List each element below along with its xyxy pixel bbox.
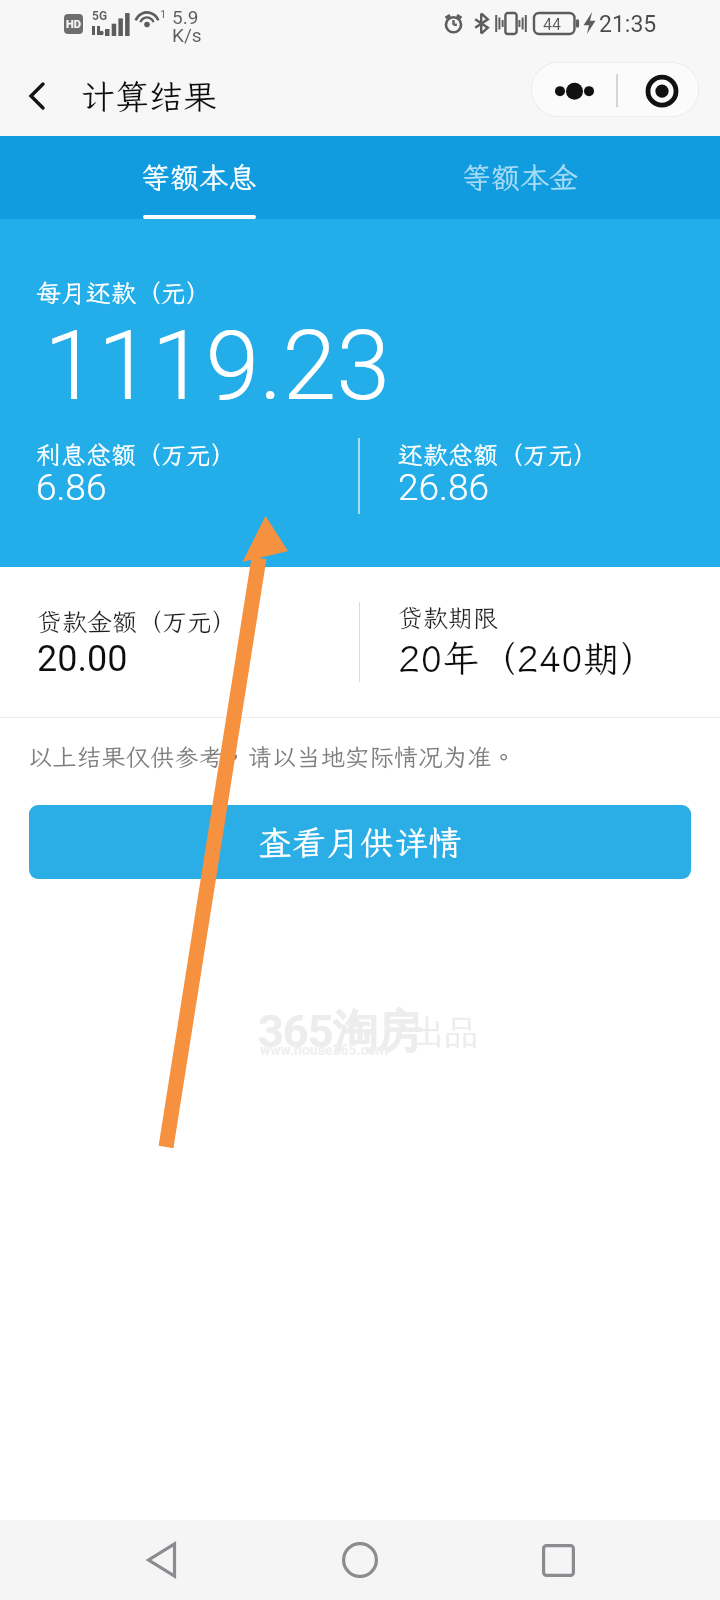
button[interactable]: 查看月供详情 <box>29 805 691 879</box>
staticText: 26.86 <box>398 466 489 509</box>
staticText: 20.00 <box>37 638 128 680</box>
staticText: 44 <box>543 15 561 34</box>
staticText: 查看月供详情 <box>258 820 462 865</box>
staticText: 等额本金 <box>462 158 579 196</box>
button[interactable]: 主屏幕 <box>325 1525 395 1595</box>
staticText: 21:35 <box>599 11 657 38</box>
staticText: HD <box>66 18 81 31</box>
staticText: K/s <box>172 24 202 46</box>
staticText: 5.9 <box>172 6 199 28</box>
button[interactable]: 返回 <box>14 73 60 119</box>
staticText: 5G <box>92 9 108 23</box>
button[interactable]: 等额本金 <box>360 136 681 219</box>
button[interactable]: 最近任务 <box>523 1525 593 1595</box>
staticText: 还款总额（万元） <box>398 438 599 471</box>
staticText: 以上结果仅供参考，请以当地实际情况为准。 <box>28 741 516 773</box>
staticText: 1119.23 <box>44 309 390 423</box>
staticText: 每月还款（元） <box>36 276 212 309</box>
staticText: 20年（240期） <box>398 634 657 683</box>
button[interactable]: 等额本息 <box>39 136 360 219</box>
staticText: 1 <box>160 8 167 21</box>
staticText: 等额本息 <box>141 158 258 196</box>
staticText: www.house365.com <box>260 1042 388 1058</box>
staticText: 利息总额（万元） <box>36 438 237 471</box>
staticText: 贷款金额（万元） <box>37 605 238 638</box>
staticText: 出品 <box>412 1012 478 1054</box>
button[interactable]: 更多选项 <box>531 62 699 117</box>
staticText: 贷款期限 <box>398 601 499 634</box>
button[interactable]: 返回 <box>128 1525 198 1595</box>
staticText: 365淘房 <box>258 1004 421 1061</box>
staticText: 计算结果 <box>81 74 217 119</box>
staticText: 6.86 <box>36 466 107 509</box>
